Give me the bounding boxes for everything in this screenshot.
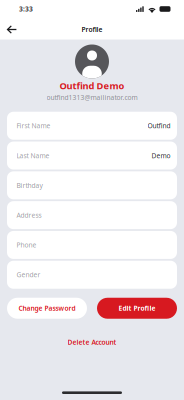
staticText: First Name — [16, 121, 50, 130]
staticText: Profile — [81, 25, 102, 34]
staticText: Birthday — [16, 181, 42, 190]
button[interactable]: Delete Account — [67, 338, 116, 347]
button[interactable]: First Name — [7, 112, 177, 140]
staticText: Outfind — [147, 121, 170, 130]
staticText: Outfind Demo — [59, 79, 124, 92]
button[interactable]: Address — [7, 201, 177, 229]
button[interactable]: Edit Profile — [97, 298, 177, 319]
button[interactable]: Gender — [7, 261, 177, 289]
staticText: outfind1313@mailinator.com — [46, 93, 137, 102]
staticText: Gender — [16, 270, 40, 279]
staticText: 3:33 — [19, 5, 33, 13]
staticText: Address — [16, 211, 41, 220]
staticText: Edit Profile — [118, 304, 155, 313]
button[interactable]: Phone — [7, 231, 177, 259]
button[interactable]: Back — [1, 21, 23, 37]
staticText: Last Name — [16, 151, 49, 160]
button[interactable]: Last Name — [7, 141, 177, 169]
staticText: Change Password — [18, 304, 75, 313]
button[interactable]: Birthday — [7, 171, 177, 199]
staticText: Phone — [16, 240, 36, 249]
staticText: Delete Account — [67, 338, 116, 347]
button[interactable]: Change Password — [7, 298, 87, 319]
staticText: Demo — [151, 151, 170, 160]
